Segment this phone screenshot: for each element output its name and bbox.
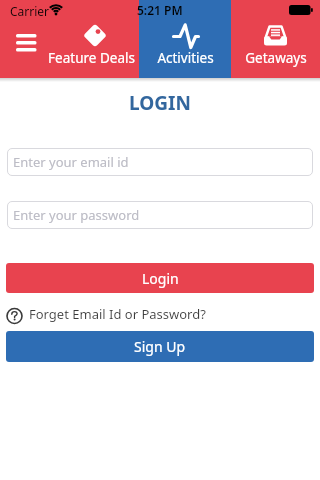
staticText: Sign Up (134, 337, 186, 356)
staticText: Enter your password (13, 206, 140, 224)
staticText: LOGIN (129, 90, 191, 116)
button[interactable]: Feature Deals (44, 20, 139, 78)
staticText: Carrier (10, 3, 50, 19)
staticText: Enter your email id (13, 153, 129, 171)
button[interactable]: Enter your password (7, 201, 313, 229)
staticText: Feature Deals (48, 49, 135, 67)
button[interactable]: Getaways (231, 20, 320, 78)
staticText: Login (142, 269, 179, 288)
staticText: Getaways (245, 49, 307, 67)
staticText: 5:21 PM (137, 2, 183, 18)
button[interactable]: Forget Email Id or Password? (6, 304, 206, 324)
button[interactable] (8, 26, 44, 58)
button[interactable]: Activities (139, 20, 231, 78)
button[interactable]: Enter your email id (7, 148, 313, 176)
button[interactable]: Sign Up (6, 331, 314, 362)
staticText: Forget Email Id or Password? (29, 305, 206, 323)
button[interactable]: Login (6, 263, 314, 293)
staticText: Activities (157, 49, 214, 67)
